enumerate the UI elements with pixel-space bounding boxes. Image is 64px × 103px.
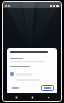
button[interactable]: [10, 85, 21, 91]
button[interactable]: [10, 79, 54, 81]
button[interactable]: [41, 85, 54, 91]
button[interactable]: Home: [29, 94, 35, 100]
button[interactable]: [10, 71, 54, 77]
button[interactable]: [10, 66, 54, 67]
button[interactable]: [10, 57, 54, 63]
button[interactable]: Back: [45, 94, 51, 100]
button[interactable]: Recent apps: [13, 94, 19, 100]
